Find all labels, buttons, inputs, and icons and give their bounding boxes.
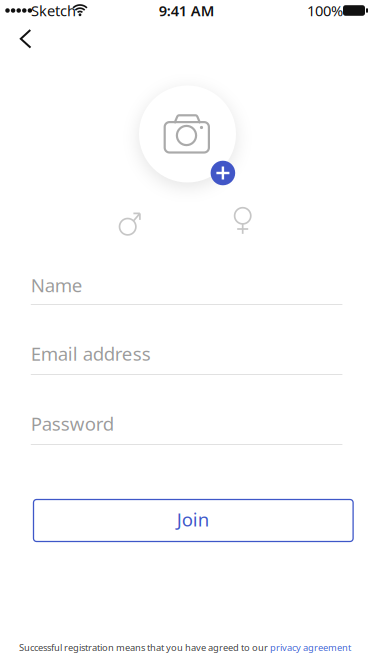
staticText: 100% — [307, 1, 343, 20]
staticText: privacy agreement — [270, 641, 351, 653]
button[interactable]: Name — [31, 265, 342, 305]
button[interactable]: Join — [33, 499, 353, 541]
button[interactable]: Add profile photo — [139, 85, 236, 182]
button[interactable]: Add photo — [211, 161, 235, 185]
button[interactable]: Female — [220, 201, 264, 245]
button[interactable]: Male — [106, 201, 150, 245]
staticText: Name — [31, 273, 83, 297]
staticText: Join — [177, 507, 210, 532]
staticText: Password — [31, 411, 114, 436]
staticText: Sketch — [31, 1, 76, 20]
button[interactable]: privacy agreement — [270, 641, 351, 653]
staticText: Successful registration means that you h… — [19, 641, 270, 653]
staticText: Email address — [31, 341, 151, 366]
button[interactable]: Back — [0, 22, 44, 56]
staticText: 9:41 AM — [159, 1, 215, 20]
button[interactable]: Email address — [31, 333, 342, 373]
button[interactable]: Password — [31, 403, 342, 443]
